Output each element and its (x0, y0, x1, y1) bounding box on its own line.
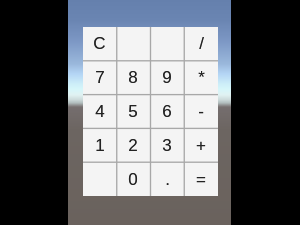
button[interactable]: Clear (83, 27, 116, 60)
staticText: 9 (162, 68, 172, 87)
staticText: 8 (128, 68, 138, 87)
staticText: 2 (128, 136, 138, 155)
staticText: = (196, 170, 206, 189)
button[interactable]: Equals (184, 162, 218, 196)
staticText: = (196, 170, 206, 189)
button[interactable]: Multiply (184, 60, 218, 94)
button[interactable]: Divide (184, 27, 218, 60)
button[interactable]: 8 (116, 60, 150, 94)
staticText: 7 (95, 68, 105, 87)
button[interactable]: Decimal point (150, 162, 184, 196)
button[interactable]: 2 (116, 128, 150, 162)
staticText: 6 (162, 102, 172, 121)
button[interactable]: 4 (83, 94, 116, 128)
staticText: 4 (95, 102, 105, 121)
button[interactable]: 0 (116, 162, 150, 196)
button[interactable]: 5 (116, 94, 150, 128)
staticText: 3 (162, 136, 172, 155)
button[interactable]: 3 (150, 128, 184, 162)
staticText: . (165, 170, 170, 189)
button[interactable]: 1 (83, 128, 116, 162)
staticText: - (198, 102, 204, 121)
staticText: - (198, 102, 204, 121)
staticText: C (93, 34, 106, 53)
button[interactable]: 7 (83, 60, 116, 94)
staticText: / (199, 34, 204, 53)
staticText: * (198, 68, 205, 87)
staticText: . (165, 170, 170, 189)
staticText: / (199, 34, 204, 53)
button[interactable]: 9 (150, 60, 184, 94)
staticText: 5 (128, 102, 138, 121)
staticText: + (196, 136, 206, 155)
staticText: 7 (95, 68, 105, 87)
staticText: C (93, 34, 106, 53)
staticText: 1 (95, 136, 105, 155)
staticText: * (198, 68, 205, 87)
staticText: 5 (128, 102, 138, 121)
staticText: 0 (128, 170, 138, 189)
staticText: 8 (128, 68, 138, 87)
staticText: 1 (95, 136, 105, 155)
staticText: 3 (162, 136, 172, 155)
staticText: 6 (162, 102, 172, 121)
staticText: 9 (162, 68, 172, 87)
button[interactable]: Add (184, 128, 218, 162)
staticText: + (196, 136, 206, 155)
staticText: 0 (128, 170, 138, 189)
button[interactable]: Subtract (184, 94, 218, 128)
staticText: 2 (128, 136, 138, 155)
staticText: 4 (95, 102, 105, 121)
button[interactable]: 6 (150, 94, 184, 128)
